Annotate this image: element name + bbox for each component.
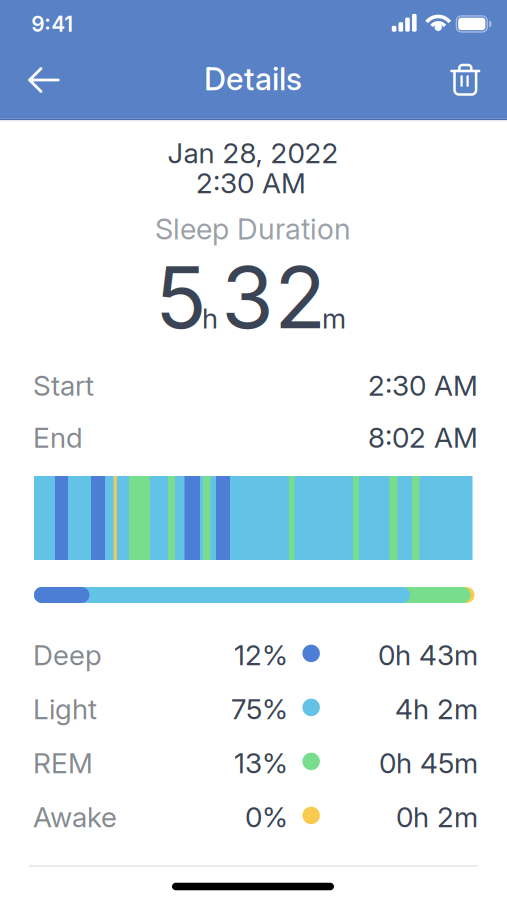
staticText: 13% [234,746,288,780]
staticText: 0h 45m [379,746,478,780]
staticText: 0h 2m [396,800,478,834]
staticText: 4h 2m [395,692,478,726]
staticText: Details [204,60,302,98]
staticText: Sleep Duration [155,211,351,247]
staticText: Awake [33,800,117,834]
staticText: End [33,421,83,454]
staticText: 2:30 AM [196,166,306,200]
staticText: REM [33,746,93,780]
staticText: 0% [245,800,288,834]
staticText: 32 [221,246,326,349]
staticText: h [202,301,218,335]
staticText: 0h 43m [378,638,478,672]
staticText: 2:30 AM [368,369,478,402]
staticText: 5 [155,246,207,349]
staticText: 8:02 AM [368,421,478,454]
staticText: Light [33,692,97,726]
staticText: 75% [231,692,288,726]
staticText: Start [33,369,94,402]
staticText: 9:41 [31,11,73,37]
staticText: 12% [234,638,288,672]
staticText: m [322,301,346,335]
staticText: Deep [33,638,102,672]
staticText: Jan 28, 2022 [167,136,338,170]
